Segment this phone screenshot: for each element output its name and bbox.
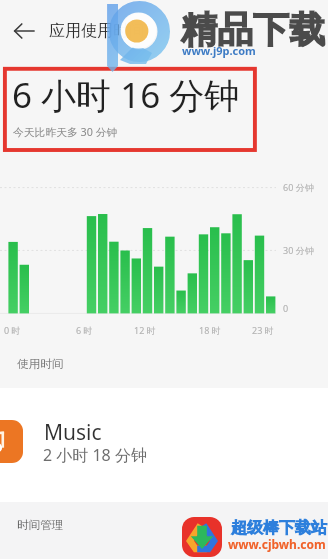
staticText: 18 时 [199,324,221,336]
staticText: 今天比昨天多 30 分钟 [13,124,118,139]
staticText: 12 时 [134,324,156,336]
staticText: 使用时间 [17,357,64,372]
staticText: 应用使用时间 [49,21,145,41]
staticText: 60 分钟 [283,181,314,193]
staticText: 30 分钟 [283,244,314,256]
staticText: 2 小时 18 分钟 [43,444,147,466]
staticText: 23 时 [252,324,274,336]
button[interactable]: Back [0,0,47,62]
staticText: 6 小时 16 分钟 [12,71,240,119]
staticText: www.j9p.com [182,43,256,58]
staticText: 精品下载 [181,7,325,52]
staticText: 0 时 [4,324,21,336]
button[interactable]: Music [0,406,328,478]
staticText: 6 时 [76,324,93,336]
staticText: 0 [283,302,289,314]
staticText: www.cjbwh.com [228,536,326,552]
staticText: Music [44,418,102,447]
staticText: 时间管理 [17,518,64,533]
staticText: 超级棒下载站 [231,518,327,538]
